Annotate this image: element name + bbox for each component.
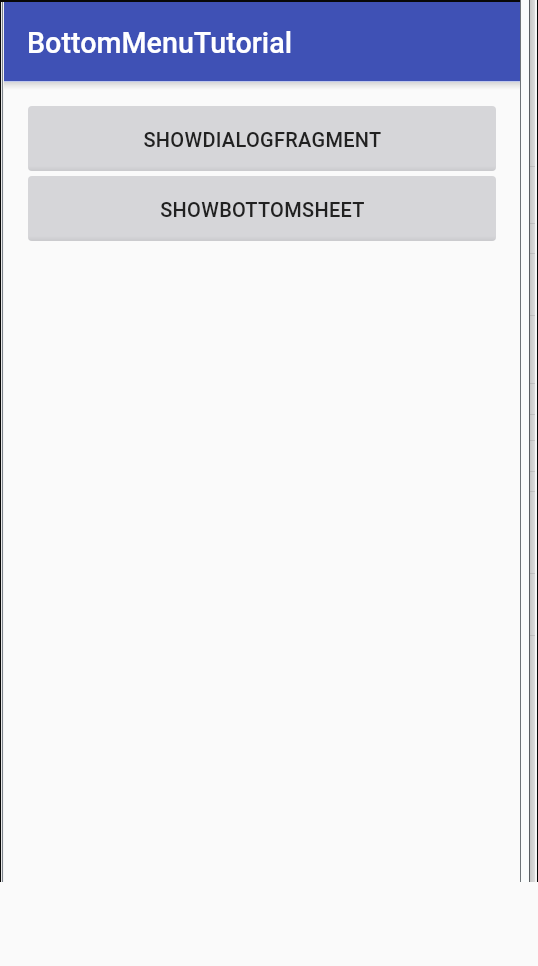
other: Scrollbar [530, 0, 535, 882]
button[interactable]: SHOWBOTTOMSHEET [28, 176, 496, 241]
button[interactable]: BottomMenuTutorial [4, 2, 520, 81]
staticText: BottomMenuTutorial [27, 26, 293, 60]
staticText: SHOWDIALOGFRAGMENT [143, 128, 382, 151]
button[interactable]: SHOWDIALOGFRAGMENT [28, 106, 496, 171]
staticText: SHOWBOTTOMSHEET [160, 198, 365, 221]
